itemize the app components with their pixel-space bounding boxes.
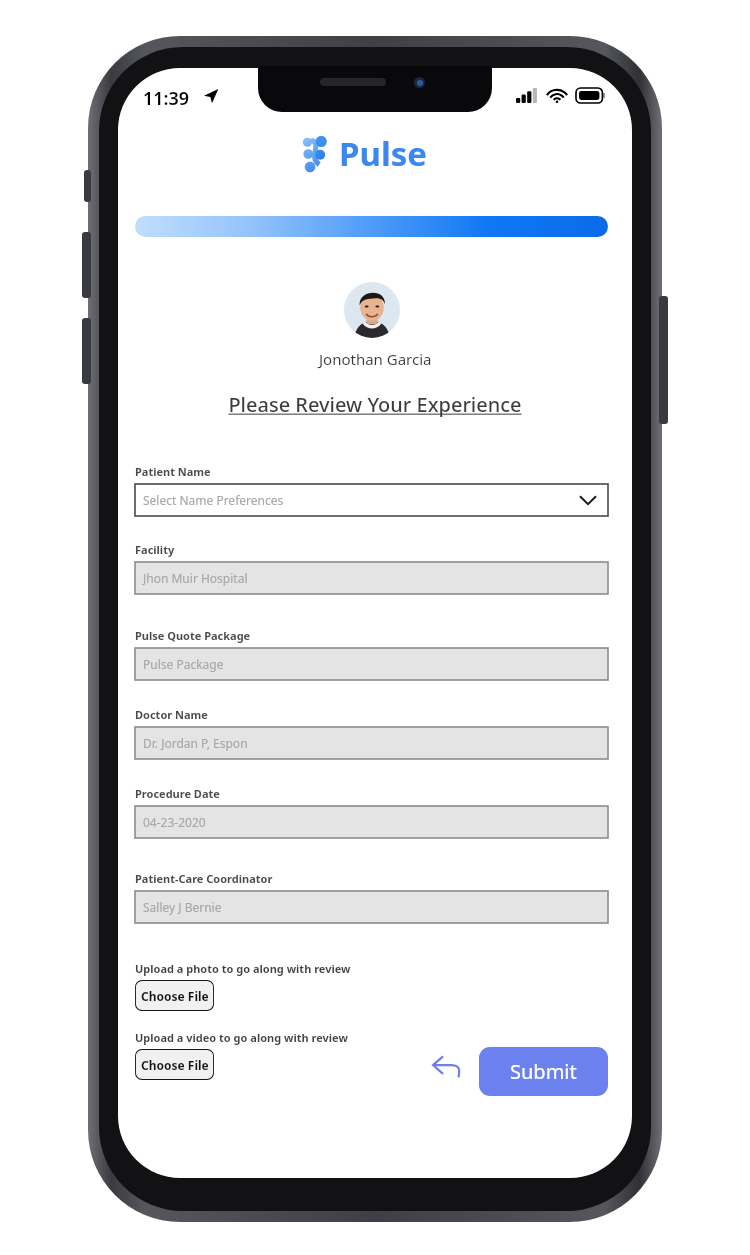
staticText: Pulse Quote Package bbox=[135, 628, 251, 643]
staticText: Facility bbox=[135, 542, 175, 557]
button[interactable]: Pulse Package bbox=[135, 648, 608, 680]
button[interactable]: Submit bbox=[479, 1047, 608, 1096]
button[interactable]: 04-23-2020 bbox=[135, 806, 608, 838]
staticText: Doctor Name bbox=[135, 707, 208, 722]
staticText: Upload a video to go along with review bbox=[135, 1030, 348, 1045]
staticText: Procedure Date bbox=[135, 786, 220, 801]
staticText: 11:39 bbox=[143, 86, 190, 111]
button[interactable]: Choose File bbox=[135, 980, 214, 1011]
button[interactable]: Back bbox=[423, 1043, 469, 1089]
button[interactable]: Choose File bbox=[135, 1049, 214, 1080]
staticText: Jhon Muir Hospital bbox=[143, 570, 248, 586]
staticText: Patient Name bbox=[135, 464, 211, 479]
staticText: Upload a photo to go along with review bbox=[135, 961, 351, 976]
staticText: Jonothan Garcia bbox=[319, 349, 432, 369]
button[interactable]: Dr. Jordan P, Espon bbox=[135, 727, 608, 759]
staticText: Select Name Preferences bbox=[143, 492, 284, 508]
staticText: Pulse bbox=[339, 131, 428, 176]
staticText: Choose File bbox=[141, 1057, 209, 1073]
button[interactable]: Jhon Muir Hospital bbox=[135, 562, 608, 594]
staticText: Salley J Bernie bbox=[143, 899, 222, 915]
staticText: 04-23-2020 bbox=[143, 814, 206, 830]
button[interactable]: Salley J Bernie bbox=[135, 891, 608, 923]
staticText: Pulse Package bbox=[143, 656, 224, 672]
staticText: Please Review Your Experience bbox=[228, 391, 522, 418]
staticText: Patient-Care Coordinator bbox=[135, 871, 273, 886]
staticText: Choose File bbox=[141, 988, 209, 1004]
button[interactable]: Pulse bbox=[303, 131, 428, 176]
staticText: Submit bbox=[510, 1058, 577, 1085]
button[interactable]: Select Name Preferences bbox=[135, 484, 608, 516]
staticText: Dr. Jordan P, Espon bbox=[143, 735, 248, 751]
